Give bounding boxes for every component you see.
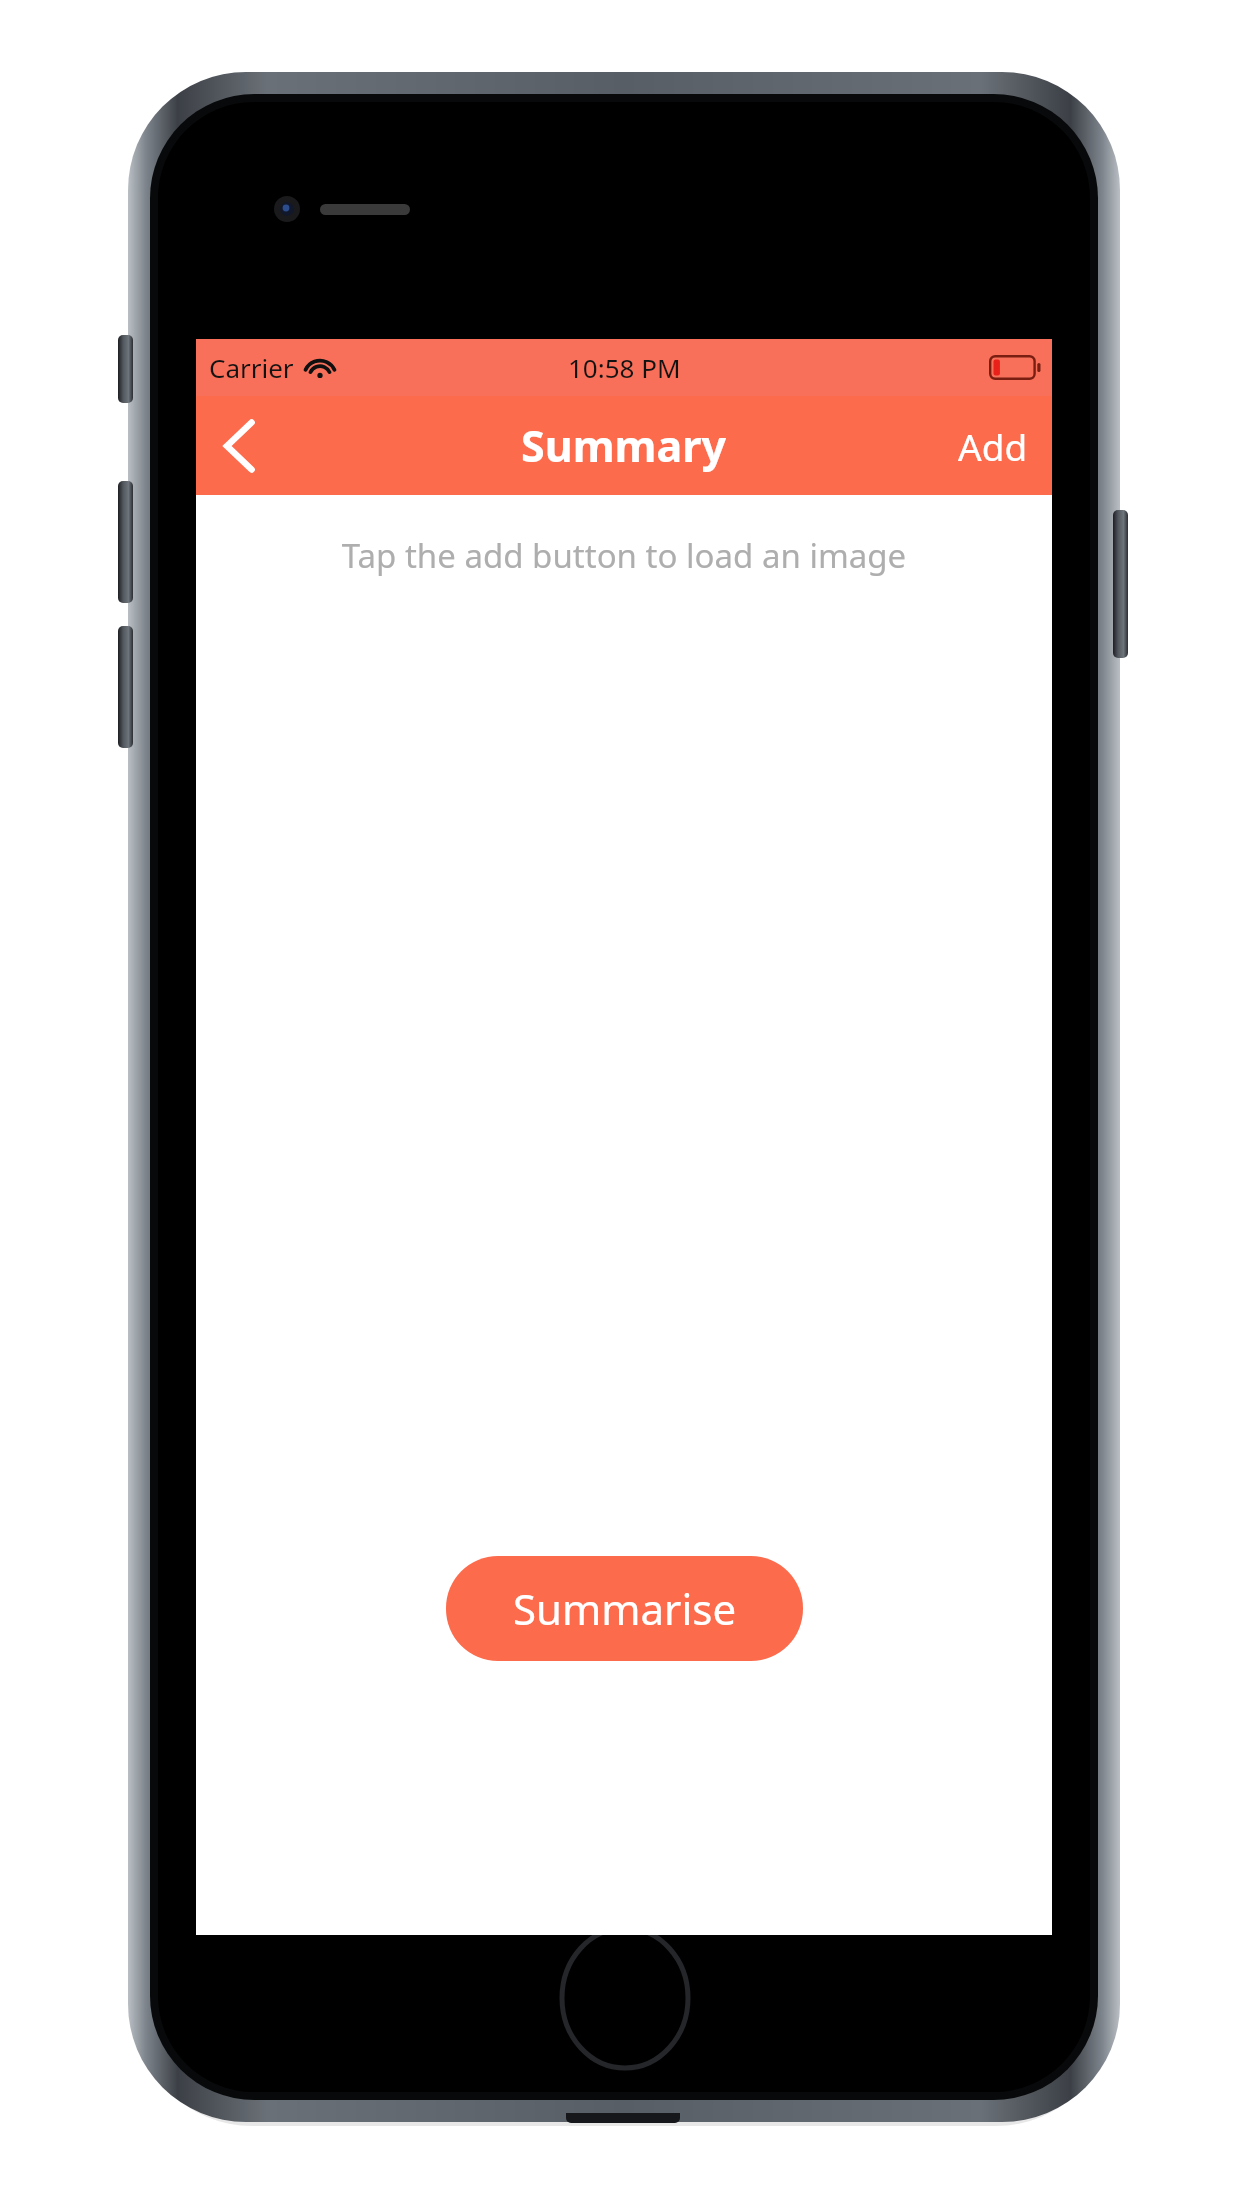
staticText: Tap the add button to load an image xyxy=(196,533,1052,578)
staticText: 10:58 PM xyxy=(568,350,681,385)
button[interactable]: Back xyxy=(196,396,282,495)
button[interactable]: Summarise xyxy=(446,1556,803,1661)
staticText: Summary xyxy=(521,416,727,475)
staticText: Summarise xyxy=(513,1580,737,1637)
button[interactable]: Add xyxy=(934,396,1052,495)
staticText: Add xyxy=(958,421,1028,471)
staticText: Carrier xyxy=(209,350,294,385)
